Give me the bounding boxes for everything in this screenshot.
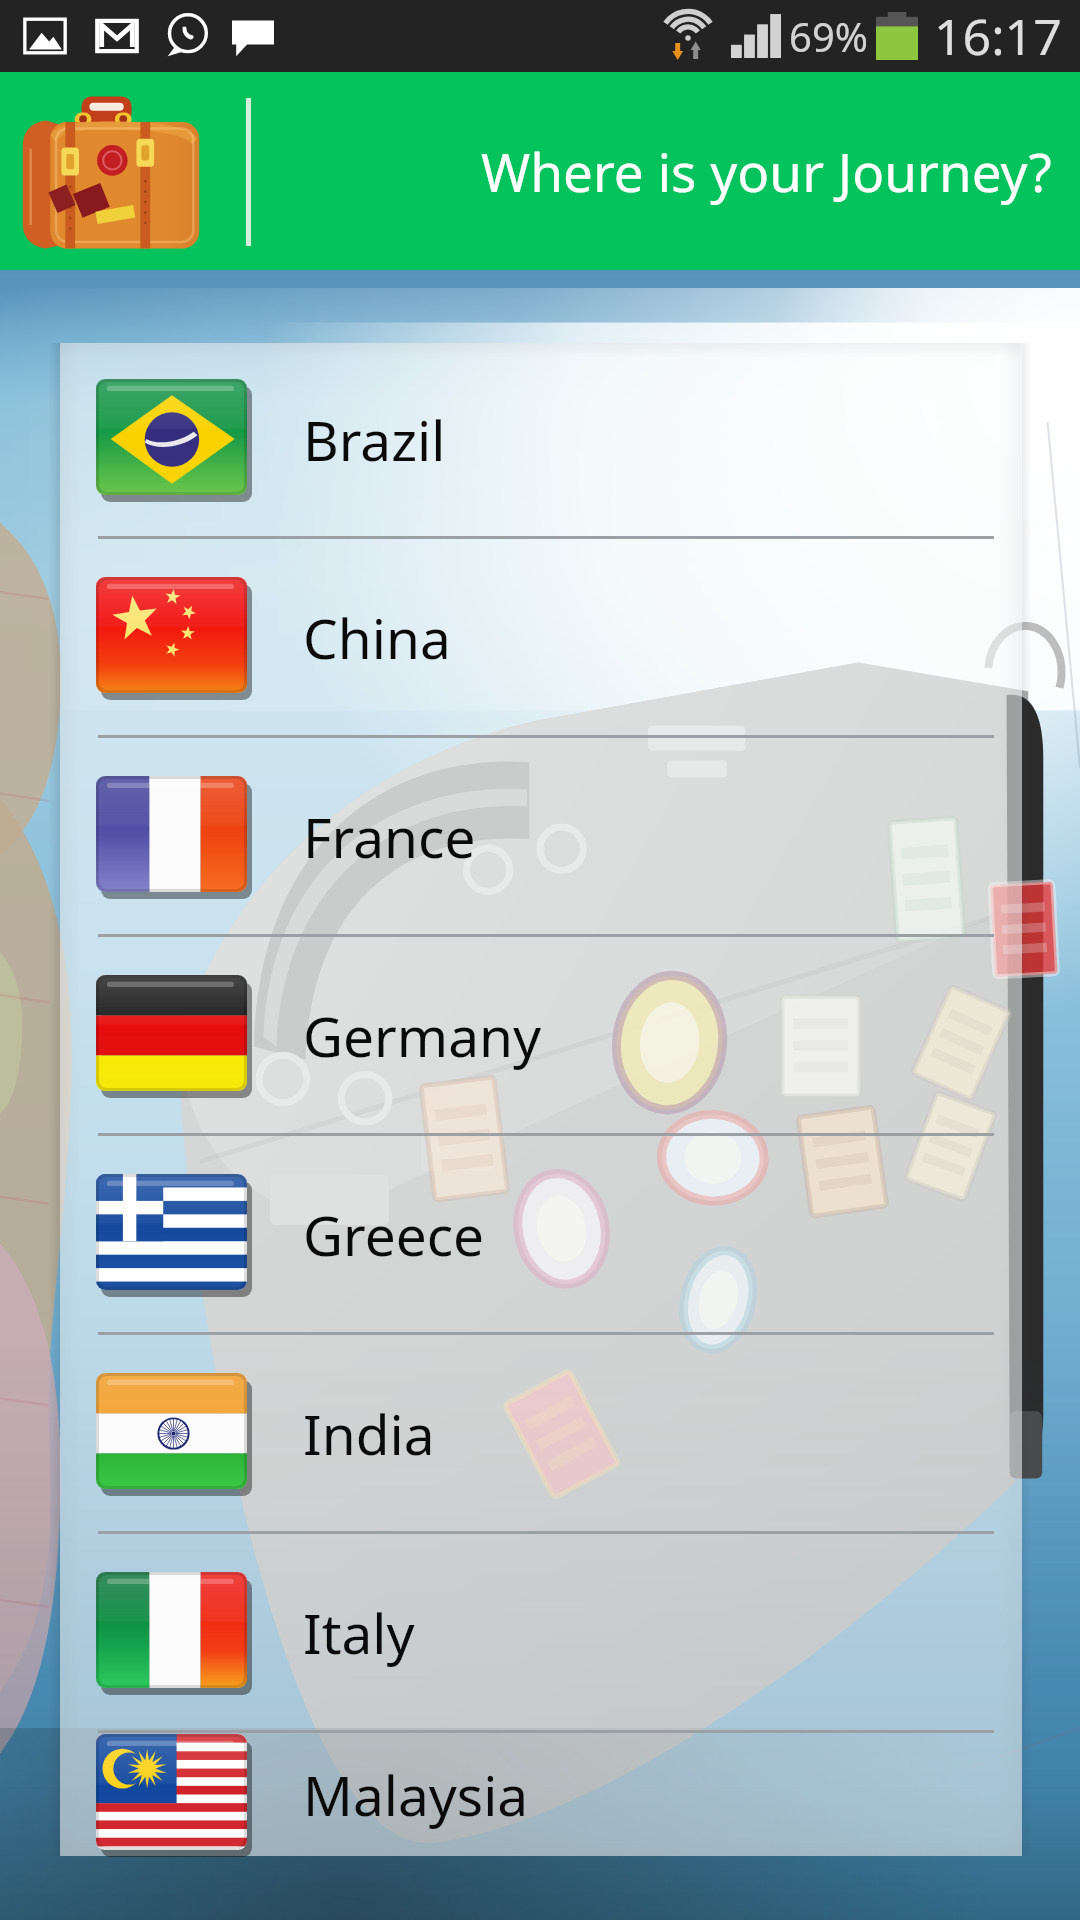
staticText: China <box>303 600 451 675</box>
staticText: 16:17 <box>934 2 1062 70</box>
staticText: Brazil <box>303 402 446 477</box>
button[interactable]: India <box>60 1335 1022 1531</box>
button[interactable]: Malaysia <box>60 1733 1022 1856</box>
button[interactable]: China <box>60 539 1022 735</box>
staticText: Malaysia <box>303 1757 529 1832</box>
staticText: Germany <box>303 998 542 1073</box>
button[interactable]: Italy <box>60 1534 1022 1730</box>
staticText: Where is your Journey? <box>481 135 1052 207</box>
staticText: Italy <box>303 1595 415 1670</box>
staticText: 69% <box>789 9 868 63</box>
button[interactable]: Greece <box>60 1136 1022 1332</box>
staticText: India <box>303 1396 435 1471</box>
staticText: Greece <box>303 1197 485 1272</box>
staticText: France <box>303 799 476 874</box>
button[interactable]: France <box>60 738 1022 934</box>
button[interactable]: Brazil <box>60 343 1022 536</box>
button[interactable]: App logo, open home <box>12 94 208 254</box>
button[interactable]: Germany <box>60 937 1022 1133</box>
